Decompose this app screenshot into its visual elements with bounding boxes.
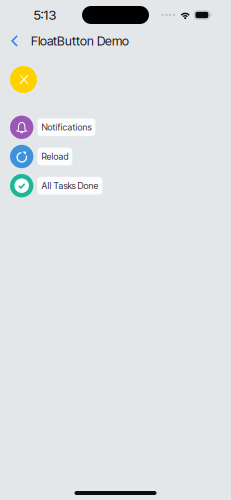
staticText: 5:13 <box>33 7 56 23</box>
staticText: Reload <box>41 151 68 162</box>
button[interactable]: Close menu <box>10 66 37 93</box>
button[interactable]: Notifications <box>10 116 95 139</box>
staticText: All Tasks Done <box>41 180 98 191</box>
button[interactable]: Back <box>0 30 31 52</box>
button[interactable]: All Tasks Done <box>10 174 102 197</box>
staticText: Notifications <box>41 122 91 133</box>
staticText: FloatButton Demo <box>31 33 129 49</box>
button[interactable]: Reload <box>10 145 72 168</box>
